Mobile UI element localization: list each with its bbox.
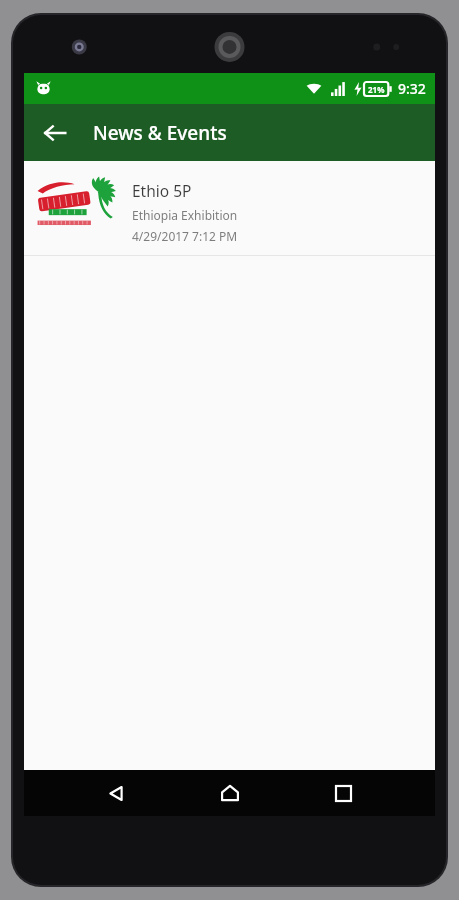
button[interactable]: Back <box>94 771 138 815</box>
staticText: Ethio 5P <box>132 180 192 201</box>
staticText: Ethiopia Exhibition <box>132 207 238 223</box>
button[interactable]: Recent apps <box>321 771 365 815</box>
button[interactable]: Home <box>208 771 252 815</box>
staticText: 21% <box>368 84 385 95</box>
staticText: 4/29/2017 7:12 PM <box>132 228 238 244</box>
button[interactable]: Back <box>32 110 78 156</box>
staticText: News & Events <box>93 120 227 146</box>
button[interactable]: Ethio 5P <box>24 172 435 255</box>
staticText: 9:32 <box>398 79 426 98</box>
